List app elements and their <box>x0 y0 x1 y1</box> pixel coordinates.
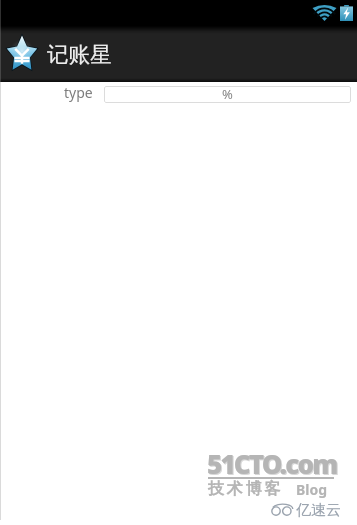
staticText: 51CTO.com <box>208 447 338 482</box>
staticText: 记账星 <box>47 41 112 68</box>
other: Wi-Fi <box>313 6 336 21</box>
button[interactable]: type <box>64 85 93 104</box>
button[interactable]: 记账星 <box>0 26 124 82</box>
button[interactable]: % <box>104 86 351 103</box>
staticText: 51CTO.com <box>207 446 337 481</box>
staticText: 技术博客 <box>208 479 284 499</box>
other: Battery charging <box>340 5 353 21</box>
staticText: Blog <box>296 480 328 499</box>
staticText: % <box>222 86 233 102</box>
staticText: 亿速云 <box>296 501 341 520</box>
